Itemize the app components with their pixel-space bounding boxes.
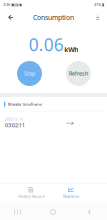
staticText: 3:36 — [3, 2, 10, 7]
button[interactable]: Download — [91, 9, 105, 26]
staticText: Monitor timeframe — [8, 102, 42, 107]
staticText: kWh — [64, 45, 78, 54]
staticText: 2020.11.14 — [5, 118, 23, 121]
staticText: ‹ — [88, 206, 90, 217]
staticText: Stop — [24, 70, 35, 77]
button[interactable]: Refresh — [66, 61, 91, 86]
staticText: 03:02:11 — [5, 122, 25, 129]
staticText: 41% — [94, 2, 101, 7]
staticText: 0.06 — [29, 33, 64, 56]
button[interactable]: Back — [71, 203, 107, 220]
button[interactable]: Back — [3, 9, 19, 26]
staticText: History Record — [18, 194, 44, 199]
staticText: Consumption — [33, 13, 74, 22]
staticText: ▣▤◆ — [11, 2, 22, 7]
staticText: Real-time — [63, 194, 79, 199]
staticText: ▮ — [102, 2, 104, 7]
staticText: Refresh — [69, 70, 88, 77]
staticText: ○ — [50, 208, 56, 215]
button[interactable]: Home — [35, 203, 71, 220]
button[interactable]: Stop — [17, 61, 42, 86]
button[interactable]: History Record — [11, 184, 51, 201]
staticText: ||| — [13, 208, 22, 215]
button[interactable]: Real-time — [51, 184, 91, 201]
button[interactable]: Recents — [0, 203, 35, 220]
